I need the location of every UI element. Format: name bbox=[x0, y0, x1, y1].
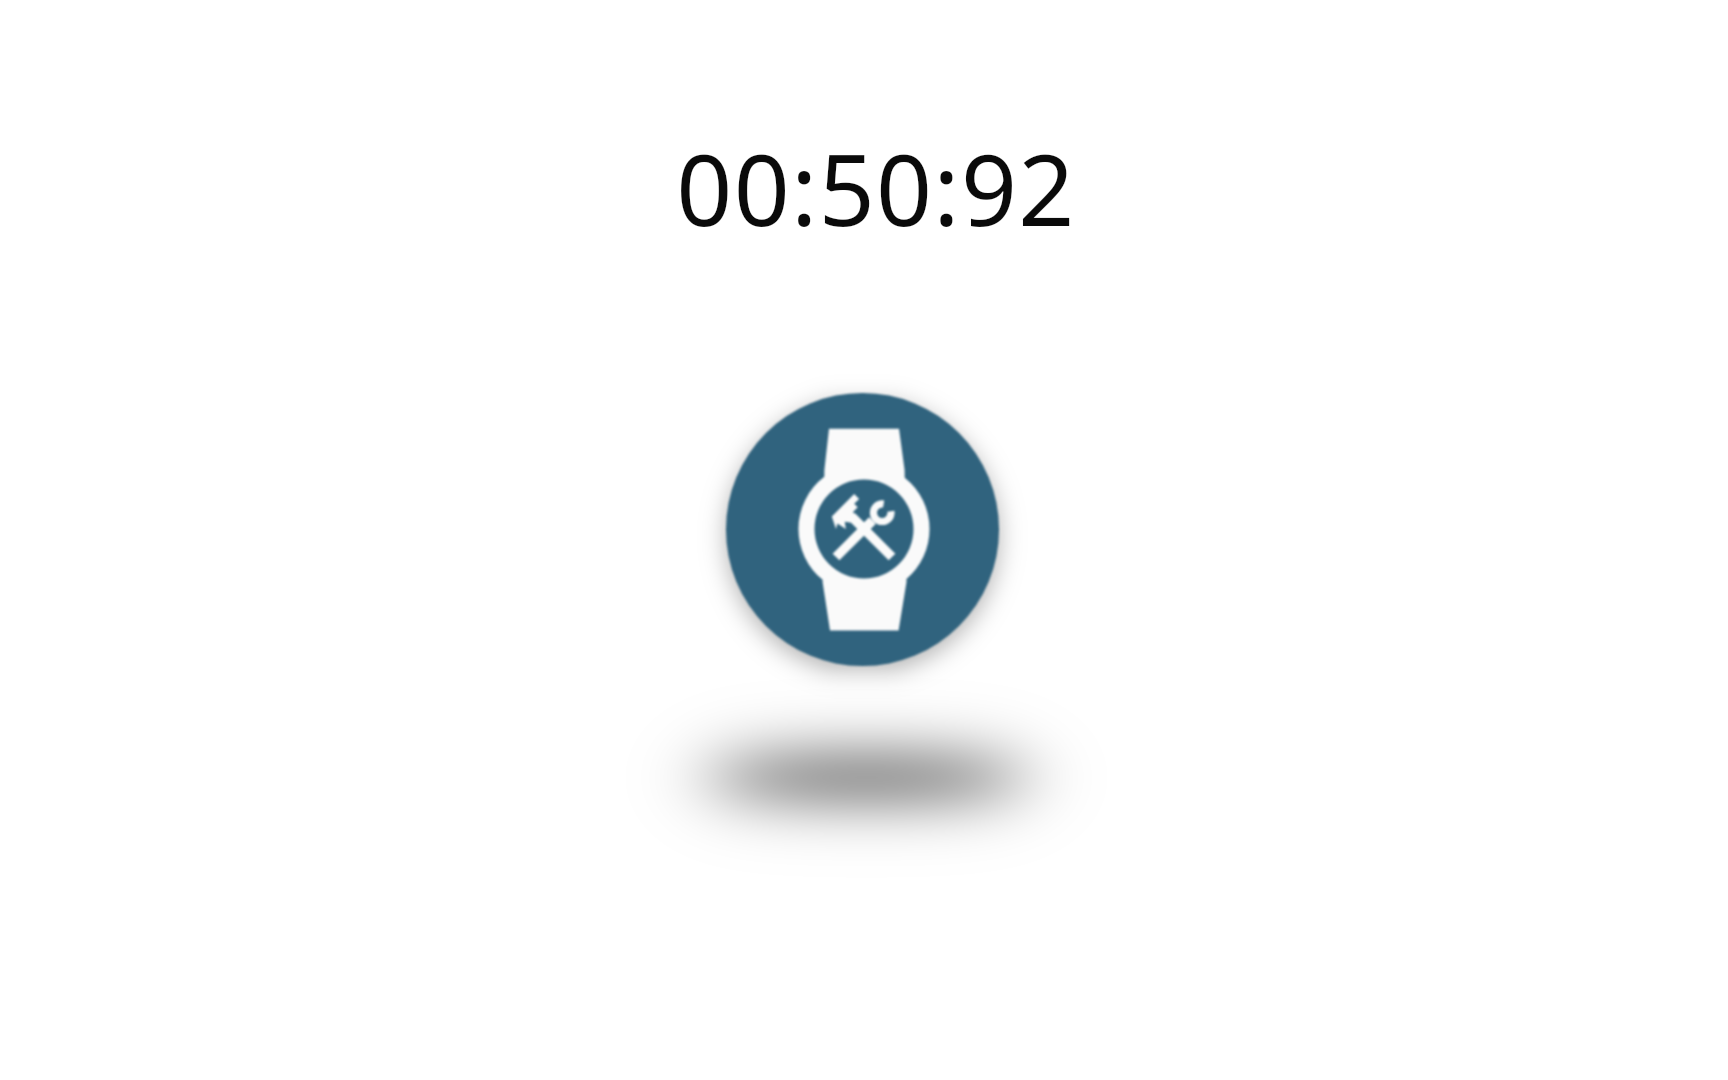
button[interactable]: Wear OS developer tools app icon bbox=[726, 393, 999, 666]
staticText: 00:50:92 bbox=[12, 121, 1728, 1080]
